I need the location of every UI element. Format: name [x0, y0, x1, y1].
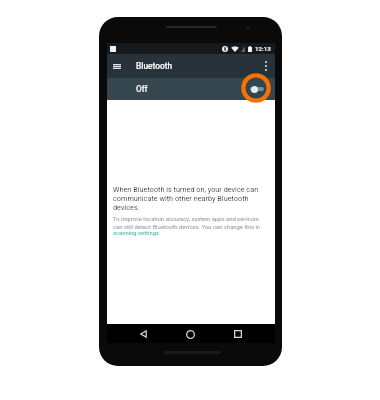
button[interactable]: Recent apps — [229, 325, 247, 343]
button[interactable]: Off — [107, 78, 275, 100]
button[interactable]: Back — [134, 325, 152, 343]
button[interactable]: More options — [256, 56, 276, 76]
staticText: 12:13 — [255, 45, 271, 52]
staticText: When Bluetooth is turned on, your device… — [113, 185, 266, 212]
button[interactable]: Open navigation drawer — [107, 56, 127, 76]
staticText: To improve location accuracy, system app… — [113, 216, 261, 230]
staticText: Off — [136, 84, 148, 94]
staticText: Bluetooth — [136, 61, 173, 71]
button[interactable]: Home — [181, 325, 199, 343]
button[interactable]: scanning settings. — [113, 230, 161, 237]
